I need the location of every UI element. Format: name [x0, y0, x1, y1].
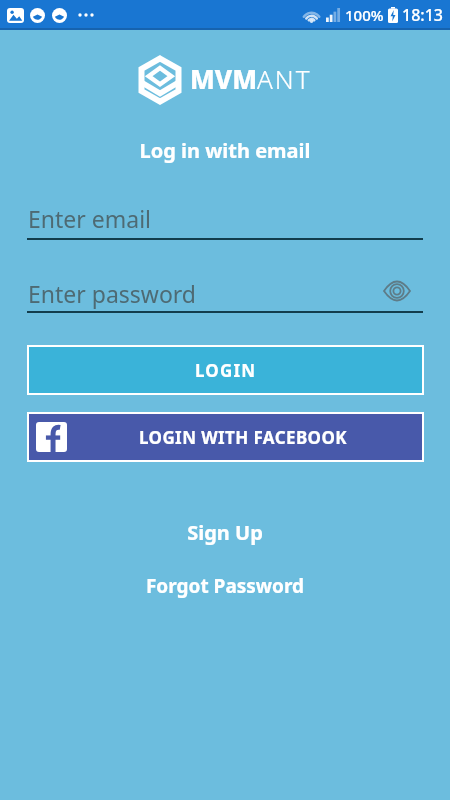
staticText: LOGIN: [195, 359, 257, 382]
staticText: MVMANT: [190, 61, 312, 96]
staticText: LOGIN WITH FACEBOOK: [139, 426, 347, 449]
button[interactable]: Forgot Password: [0, 573, 450, 599]
button[interactable]: [383, 281, 411, 301]
staticText: 18:13: [402, 4, 443, 26]
button[interactable]: LOGIN: [27, 345, 424, 395]
button[interactable]: LOGIN WITH FACEBOOK: [27, 412, 424, 462]
button[interactable]: Enter password: [27, 271, 423, 313]
staticText: Enter email: [28, 203, 152, 234]
staticText: Enter password: [28, 278, 197, 309]
staticText: Log in with email: [0, 137, 450, 164]
button[interactable]: Sign Up: [0, 519, 450, 546]
staticText: 100%: [345, 5, 384, 25]
button[interactable]: Enter email: [27, 198, 423, 240]
